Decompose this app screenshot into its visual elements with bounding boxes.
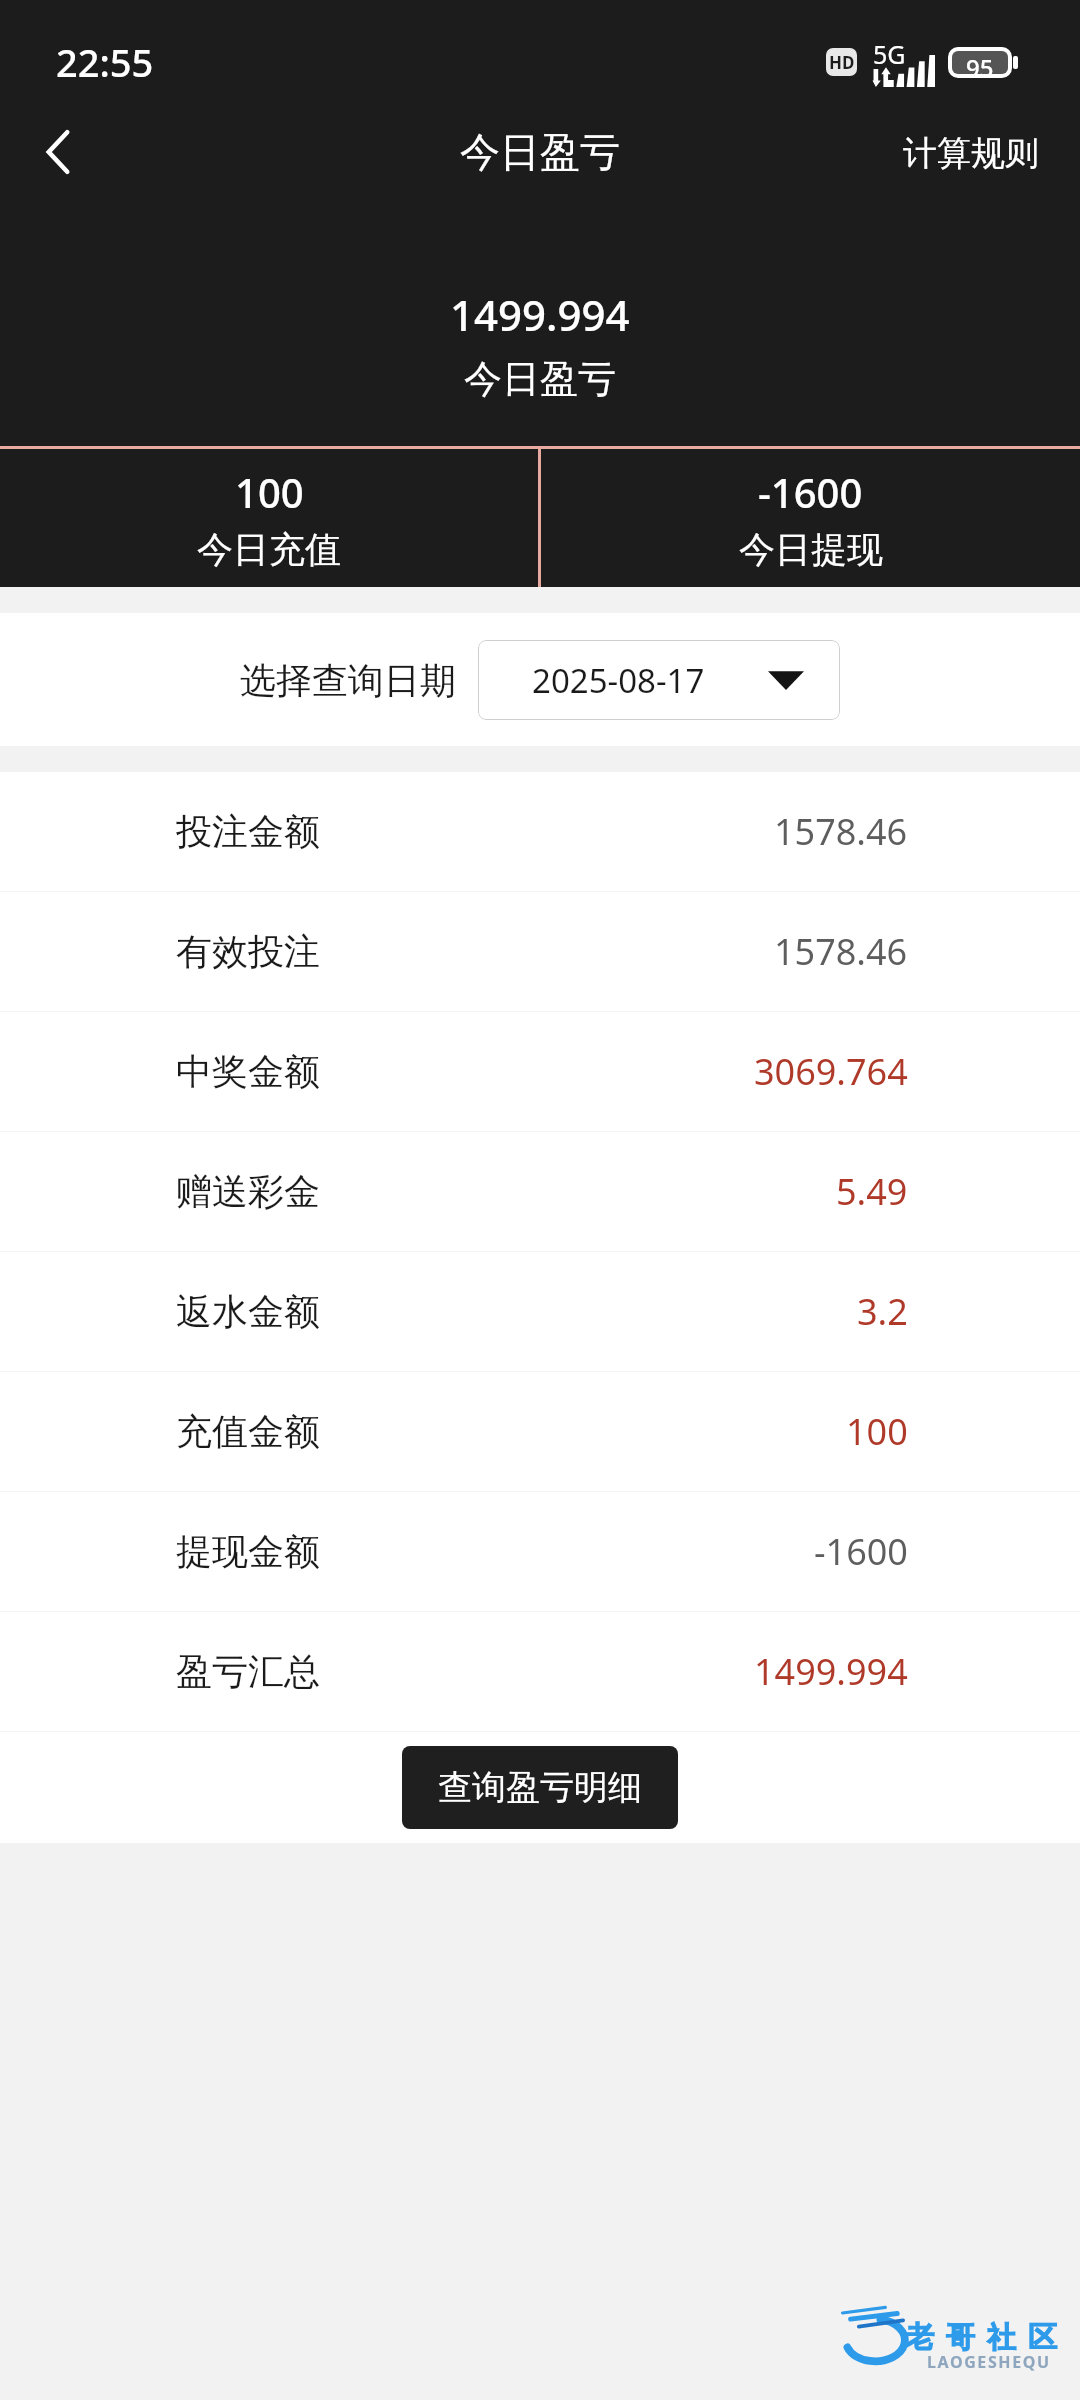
staticText: 5.49 bbox=[836, 1167, 908, 1216]
staticText: 老哥社区 bbox=[899, 2319, 1063, 2356]
staticText: 投注金额 bbox=[176, 809, 320, 854]
button[interactable]: 投注金额 bbox=[0, 772, 1080, 891]
button[interactable]: 查询盈亏明细 bbox=[402, 1746, 678, 1829]
staticText: 1578.46 bbox=[774, 807, 908, 856]
staticText: 95 bbox=[966, 51, 994, 74]
button[interactable]: 100 bbox=[0, 449, 538, 587]
staticText: 1499.994 bbox=[450, 286, 630, 343]
button[interactable]: -1600 bbox=[541, 449, 1080, 587]
staticText: 3.2 bbox=[857, 1287, 908, 1336]
staticText: 22:55 bbox=[56, 36, 154, 88]
staticText: 计算规则 bbox=[903, 132, 1039, 172]
staticText: 赠送彩金 bbox=[176, 1169, 320, 1214]
staticText: 今日充值 bbox=[197, 527, 341, 572]
staticText: -1600 bbox=[758, 465, 863, 519]
staticText: 3069.764 bbox=[754, 1047, 908, 1096]
button[interactable]: 赠送彩金 bbox=[0, 1132, 1080, 1251]
button[interactable]: 盈亏汇总 bbox=[0, 1612, 1080, 1731]
staticText: 2025-08-17 bbox=[532, 658, 705, 703]
button[interactable]: 2025-08-17 bbox=[478, 640, 840, 720]
staticText: 1499.994 bbox=[754, 1647, 908, 1696]
staticText: 盈亏汇总 bbox=[176, 1649, 320, 1694]
staticText: 有效投注 bbox=[176, 929, 320, 974]
staticText: 今日盈亏 bbox=[464, 355, 616, 403]
staticText: 提现金额 bbox=[176, 1529, 320, 1574]
staticText: 中奖金额 bbox=[176, 1049, 320, 1094]
staticText: 今日盈亏 bbox=[460, 127, 620, 177]
staticText: 查询盈亏明细 bbox=[438, 1766, 642, 1809]
other: Open date picker bbox=[768, 669, 804, 691]
staticText: 充值金额 bbox=[176, 1409, 320, 1454]
button[interactable]: Back bbox=[0, 110, 100, 194]
staticText: 100 bbox=[235, 465, 304, 519]
staticText: 今日提现 bbox=[739, 527, 883, 572]
staticText: LAOGESHEQU bbox=[927, 2351, 1051, 2373]
staticText: HD bbox=[829, 51, 855, 74]
button[interactable]: 充值金额 bbox=[0, 1372, 1080, 1491]
button[interactable]: 计算规则 bbox=[862, 110, 1080, 194]
button[interactable]: 中奖金额 bbox=[0, 1012, 1080, 1131]
staticText: 100 bbox=[846, 1407, 908, 1456]
staticText: 选择查询日期 bbox=[240, 658, 456, 703]
staticText: 1578.46 bbox=[774, 927, 908, 976]
button[interactable]: 返水金额 bbox=[0, 1252, 1080, 1371]
staticText: -1600 bbox=[814, 1527, 908, 1576]
staticText: 返水金额 bbox=[176, 1289, 320, 1334]
staticText: 5G bbox=[873, 37, 906, 71]
button[interactable]: 提现金额 bbox=[0, 1492, 1080, 1611]
button[interactable]: 有效投注 bbox=[0, 892, 1080, 1011]
